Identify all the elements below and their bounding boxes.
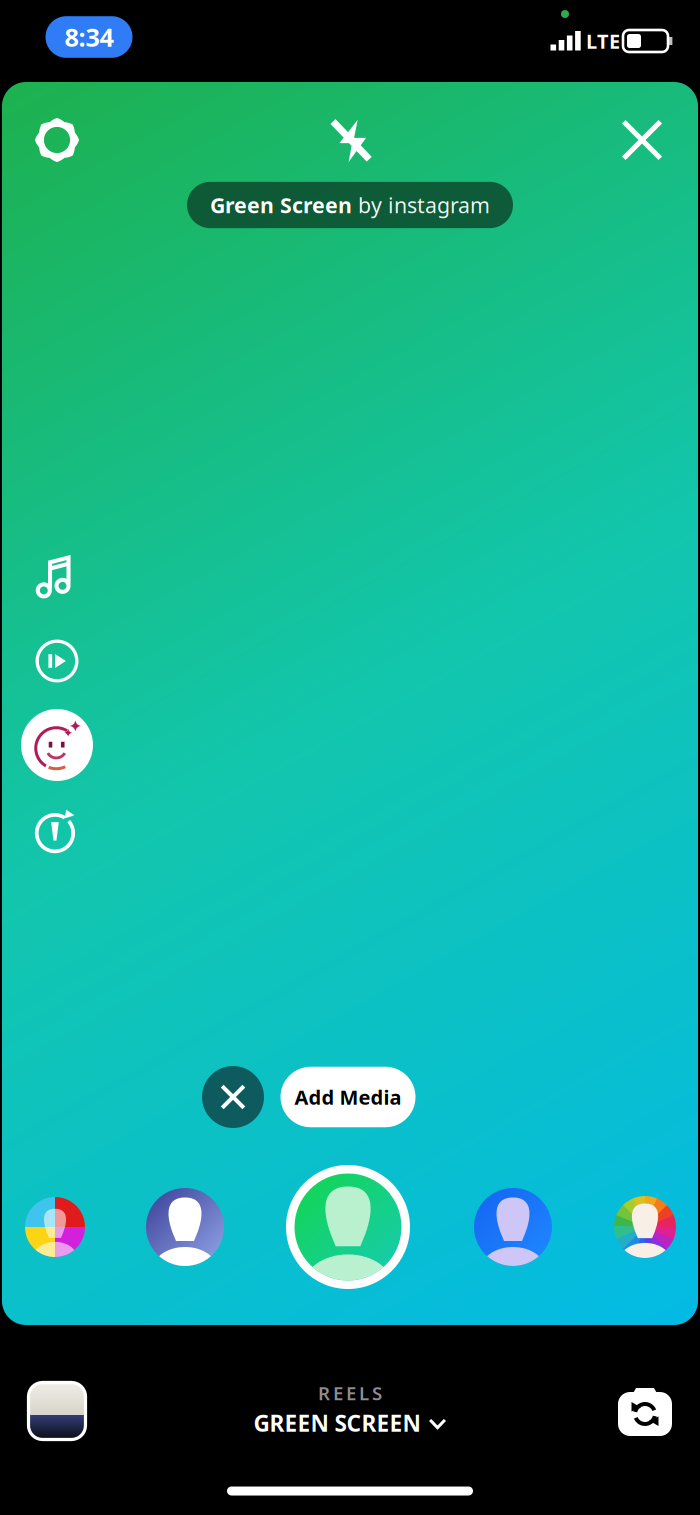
staticText: Add Media — [294, 1084, 401, 1110]
button[interactable]: Camera settings — [18, 104, 96, 176]
button[interactable]: Playback speed — [17, 622, 97, 700]
staticText: REELS — [318, 1381, 382, 1405]
button[interactable]: Rainbow effect — [597, 1172, 693, 1282]
button[interactable]: Dismiss add media — [202, 1066, 264, 1128]
button[interactable]: Flash off — [311, 104, 389, 176]
staticText: Green Screen — [210, 191, 358, 219]
staticText: 8:34 — [64, 20, 113, 54]
button[interactable]: Green screen effect, selected — [283, 1162, 413, 1292]
button[interactable]: Open gallery — [11, 1367, 103, 1455]
button[interactable]: Effects — [17, 706, 97, 784]
button[interactable]: GREEN SCREEN — [243, 1402, 456, 1444]
button[interactable]: Green Screen — [187, 182, 513, 228]
button[interactable]: Color effect — [7, 1172, 103, 1282]
staticText: by instagram — [358, 191, 490, 219]
button[interactable]: Add music — [17, 537, 97, 615]
staticText: GREEN SCREEN — [253, 1408, 420, 1438]
button[interactable]: Timer — [17, 791, 97, 869]
button[interactable]: Flip camera — [599, 1367, 691, 1455]
button[interactable]: Blue portrait effect — [458, 1172, 568, 1282]
button[interactable]: Add Media — [280, 1067, 415, 1127]
button[interactable]: Crowd effect — [130, 1172, 240, 1282]
button[interactable]: Close camera — [603, 104, 681, 176]
staticText: LTE — [586, 28, 620, 54]
